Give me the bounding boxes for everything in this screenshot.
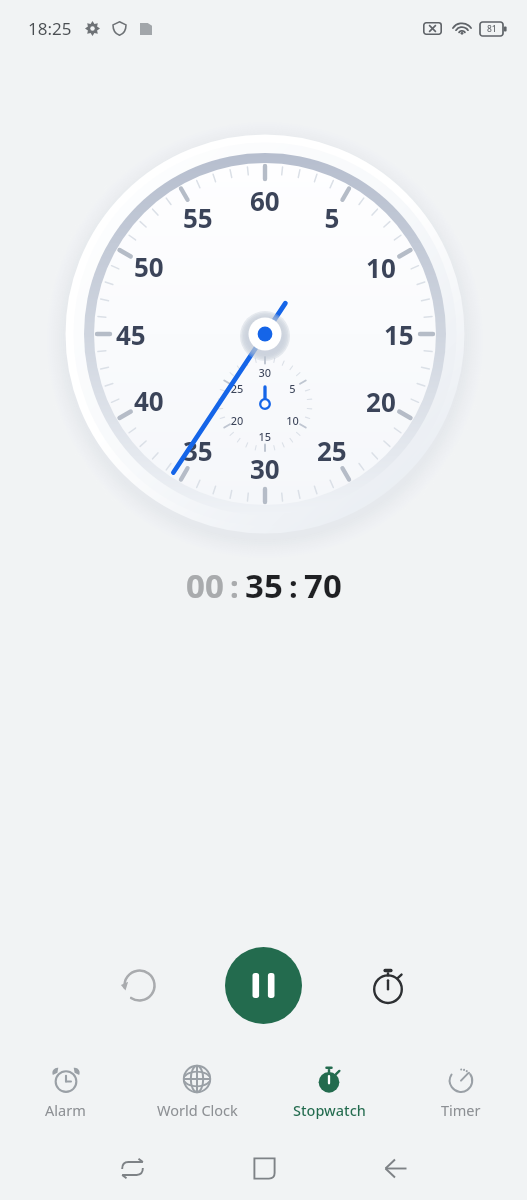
button[interactable]: Recents xyxy=(108,1144,156,1192)
staticText: Stopwatch xyxy=(293,1100,366,1120)
button[interactable]: Alarm xyxy=(0,1048,131,1135)
button[interactable]: Stopwatch xyxy=(263,1048,395,1135)
staticText: Alarm xyxy=(45,1100,86,1120)
button[interactable]: Timer xyxy=(395,1048,527,1135)
staticText: 00 xyxy=(186,563,224,608)
button[interactable]: Back xyxy=(371,1144,419,1192)
staticText: 35 xyxy=(245,563,283,608)
button[interactable]: World Clock xyxy=(131,1048,263,1135)
staticText: World Clock xyxy=(157,1100,238,1120)
button[interactable]: Pause xyxy=(225,947,302,1024)
staticText: : xyxy=(230,565,239,607)
staticText: 81 xyxy=(487,23,497,35)
staticText: : xyxy=(289,565,298,607)
staticText: 70 xyxy=(304,563,342,608)
staticText: 18:25 xyxy=(28,17,72,40)
button[interactable]: Lap xyxy=(357,954,419,1016)
button[interactable]: Home xyxy=(240,1144,288,1192)
staticText: Timer xyxy=(441,1100,481,1120)
button[interactable]: Reset xyxy=(108,954,170,1016)
